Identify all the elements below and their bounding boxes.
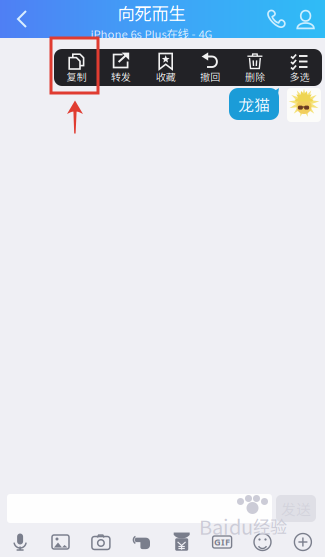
button[interactable]: 复制: [54, 49, 99, 86]
button[interactable]: 删除: [233, 49, 277, 86]
staticText: 多选: [289, 69, 309, 84]
staticText: 删除: [245, 69, 265, 84]
button[interactable]: 收藏: [143, 49, 188, 86]
button[interactable]: Camera: [81, 527, 121, 557]
button[interactable]: 多选: [277, 49, 322, 86]
button[interactable]: More: [283, 527, 323, 557]
button[interactable]: GIF: [202, 527, 242, 557]
staticText: 收藏: [156, 69, 176, 84]
button[interactable]: Gesture: [121, 527, 161, 557]
staticText: 复制: [66, 69, 86, 84]
button[interactable]: Voice call: [261, 0, 291, 38]
button[interactable]: 撤回: [188, 49, 233, 86]
button[interactable]: Contact info: [291, 0, 321, 38]
button[interactable]: 转发: [99, 49, 143, 86]
staticText: 向死而生: [117, 0, 185, 25]
staticText: GIF: [214, 536, 230, 548]
button[interactable]: Voice message: [0, 527, 40, 557]
staticText: 经验: [253, 513, 287, 539]
staticText: Baidu: [199, 511, 253, 540]
staticText: 撤回: [200, 69, 220, 84]
button[interactable]: 发送: [276, 495, 316, 522]
button[interactable]: Emoji: [242, 527, 283, 557]
staticText: iPhone 6s Plus在线 - 4G: [90, 25, 212, 42]
button[interactable]: Red packet: [161, 527, 202, 557]
button[interactable]: Photos: [40, 527, 81, 557]
staticText: 龙猫: [238, 92, 270, 116]
staticText: 转发: [111, 69, 131, 84]
button[interactable]: Back: [4, 0, 42, 38]
staticText: 发送: [281, 498, 311, 519]
